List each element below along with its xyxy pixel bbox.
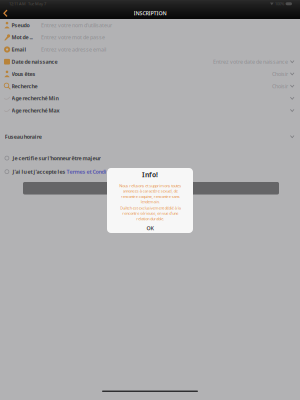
staticText: Entrez votre date de naissance: [213, 58, 288, 65]
button[interactable]: [0, 182, 300, 194]
staticText: Fuseau horaire: [5, 133, 42, 140]
button[interactable]: Pseudo: [0, 19, 300, 31]
button[interactable]: Age recherché Max: [0, 104, 300, 117]
staticText: Pseudo: [11, 22, 29, 29]
staticText: Recherche: [11, 83, 37, 90]
staticText: Date de naissance: [11, 58, 57, 65]
staticText: OK: [146, 225, 153, 232]
staticText: Age recherché Max: [11, 107, 59, 114]
staticText: Choisir: [272, 70, 288, 77]
button[interactable]: OK: [107, 221, 193, 235]
button[interactable]: J'ai lu et j'accepte les: [0, 165, 300, 178]
staticText: Entrez votre adresse email: [41, 46, 106, 53]
staticText: Nous refusons et supprimons toutes annon…: [119, 183, 181, 204]
button[interactable]: Je certifie sur l'honneur être majeur: [0, 151, 300, 165]
staticText: Termes et Conditions: [66, 168, 119, 175]
button[interactable]: Fuseau horaire: [0, 131, 300, 143]
staticText: Age recherché Min: [11, 95, 58, 102]
staticText: J'ai lu et j'accepte les: [12, 168, 66, 175]
button[interactable]: Vous êtes: [0, 68, 300, 80]
staticText: Info!: [142, 170, 158, 179]
staticText: Choisir: [272, 83, 288, 90]
button[interactable]: Back: [0, 7, 13, 19]
staticText: Vous êtes: [11, 70, 35, 77]
button[interactable]: Date de naissance: [0, 56, 300, 68]
button[interactable]: Recherche: [0, 80, 300, 92]
staticText: INSCRIPTION: [133, 10, 166, 17]
button[interactable]: Email: [0, 43, 300, 56]
staticText: Email: [11, 46, 26, 53]
staticText: Je certifie sur l'honneur être majeur: [12, 155, 100, 162]
staticText: Ouiltch est exclusivement dédié à la ren…: [119, 205, 180, 221]
staticText: 100%: [275, 1, 284, 6]
staticText: 12:11 AM Tue May 7: [9, 1, 46, 6]
staticText: Entrez votre nom d'utilisateur: [41, 22, 112, 29]
button[interactable]: Mot de ...: [0, 31, 300, 43]
staticText: Entrez votre mot de passe: [41, 34, 105, 41]
staticText: Mot de ...: [11, 34, 32, 41]
button[interactable]: Age recherché Min: [0, 92, 300, 104]
